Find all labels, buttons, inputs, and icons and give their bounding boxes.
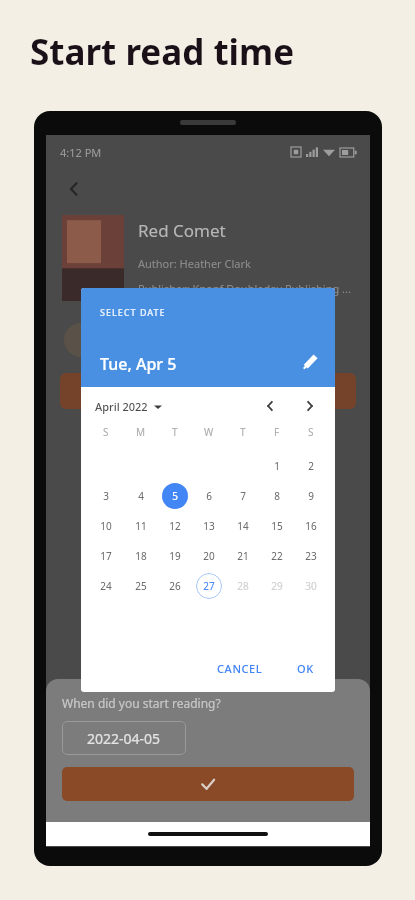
staticText: 4:12 PM: [60, 145, 102, 160]
button[interactable]: OK: [288, 655, 323, 682]
button[interactable]: 6: [196, 483, 222, 509]
button[interactable]: 7: [230, 483, 256, 509]
staticText: 2022-04-05: [87, 729, 161, 748]
staticText: 30: [305, 579, 317, 593]
staticText: 23: [305, 549, 317, 563]
staticText: 13: [203, 519, 215, 533]
button[interactable]: 30: [298, 573, 324, 599]
staticText: Tue, Apr 5: [100, 353, 177, 375]
button[interactable]: 5: [162, 483, 188, 509]
staticText: 18: [135, 549, 147, 563]
button[interactable]: 20: [196, 543, 222, 569]
staticText: 16: [305, 519, 317, 533]
staticText: 5: [172, 489, 178, 503]
staticText: 19: [169, 549, 181, 563]
button[interactable]: 12: [162, 513, 188, 539]
staticText: 25: [135, 579, 147, 593]
button[interactable]: 14: [230, 513, 256, 539]
button[interactable]: Edit date: [293, 344, 327, 378]
button[interactable]: 10: [93, 513, 119, 539]
staticText: 24: [100, 579, 112, 593]
button[interactable]: 28: [230, 573, 256, 599]
button[interactable]: 27: [196, 573, 222, 599]
staticText: SELECT DATE: [100, 306, 166, 318]
button[interactable]: 17: [93, 543, 119, 569]
staticText: 21: [237, 549, 249, 563]
button[interactable]: 22: [264, 543, 290, 569]
staticText: 11: [135, 519, 147, 533]
staticText: S: [103, 425, 109, 439]
staticText: 26: [169, 579, 181, 593]
button[interactable]: 25: [128, 573, 154, 599]
button[interactable]: 13: [196, 513, 222, 539]
staticText: 8: [274, 489, 280, 503]
staticText: 22: [271, 549, 283, 563]
staticText: 7: [240, 489, 246, 503]
button[interactable]: 23: [298, 543, 324, 569]
staticText: 17: [100, 549, 112, 563]
staticText: Publisher: Knopf Doubleday Publishing ..…: [138, 281, 351, 296]
button[interactable]: Confirm: [62, 767, 354, 801]
button[interactable]: 21: [230, 543, 256, 569]
staticText: M: [136, 425, 146, 439]
staticText: 3: [103, 489, 109, 503]
button[interactable]: 9: [298, 483, 324, 509]
button[interactable]: Previous month: [259, 395, 281, 417]
staticText: 4: [138, 489, 144, 503]
button[interactable]: 16: [298, 513, 324, 539]
staticText: T: [172, 425, 178, 439]
staticText: April 2022: [95, 399, 148, 414]
staticText: OK: [297, 661, 314, 676]
button[interactable]: Rating: [64, 323, 98, 357]
button[interactable]: 4: [128, 483, 154, 509]
staticText: 2: [308, 459, 314, 473]
button[interactable]: 18: [128, 543, 154, 569]
staticText: 12: [169, 519, 181, 533]
staticText: F: [274, 425, 280, 439]
staticText: W: [204, 425, 214, 439]
staticText: 6: [206, 489, 212, 503]
button[interactable]: 19: [162, 543, 188, 569]
staticText: 14: [237, 519, 249, 533]
staticText: 15: [271, 519, 283, 533]
staticText: 27: [203, 579, 215, 593]
staticText: 9: [308, 489, 314, 503]
button[interactable]: 26: [162, 573, 188, 599]
button[interactable]: CANCEL: [208, 655, 272, 682]
button[interactable]: 2: [298, 453, 324, 479]
staticText: CANCEL: [217, 661, 263, 676]
button[interactable]: Next month: [299, 395, 321, 417]
button[interactable]: 1: [264, 453, 290, 479]
button[interactable]: Back: [54, 169, 94, 209]
staticText: S: [308, 425, 314, 439]
staticText: 28: [237, 579, 249, 593]
button[interactable]: 2022-04-05: [62, 721, 186, 755]
staticText: Red Comet: [138, 219, 226, 242]
staticText: 20: [203, 549, 215, 563]
staticText: Author: Heather Clark: [138, 256, 251, 271]
button[interactable]: 15: [264, 513, 290, 539]
staticText: 10: [100, 519, 112, 533]
staticText: 1: [274, 459, 280, 473]
staticText: Start read time: [30, 28, 295, 76]
button[interactable]: 3: [93, 483, 119, 509]
button[interactable]: 11: [128, 513, 154, 539]
button[interactable]: [60, 373, 356, 409]
button[interactable]: 29: [264, 573, 290, 599]
button[interactable]: 8: [264, 483, 290, 509]
button[interactable]: April 2022: [95, 399, 162, 414]
staticText: T: [240, 425, 246, 439]
staticText: 29: [271, 579, 283, 593]
button[interactable]: 24: [93, 573, 119, 599]
staticText: When did you start reading?: [62, 695, 221, 711]
